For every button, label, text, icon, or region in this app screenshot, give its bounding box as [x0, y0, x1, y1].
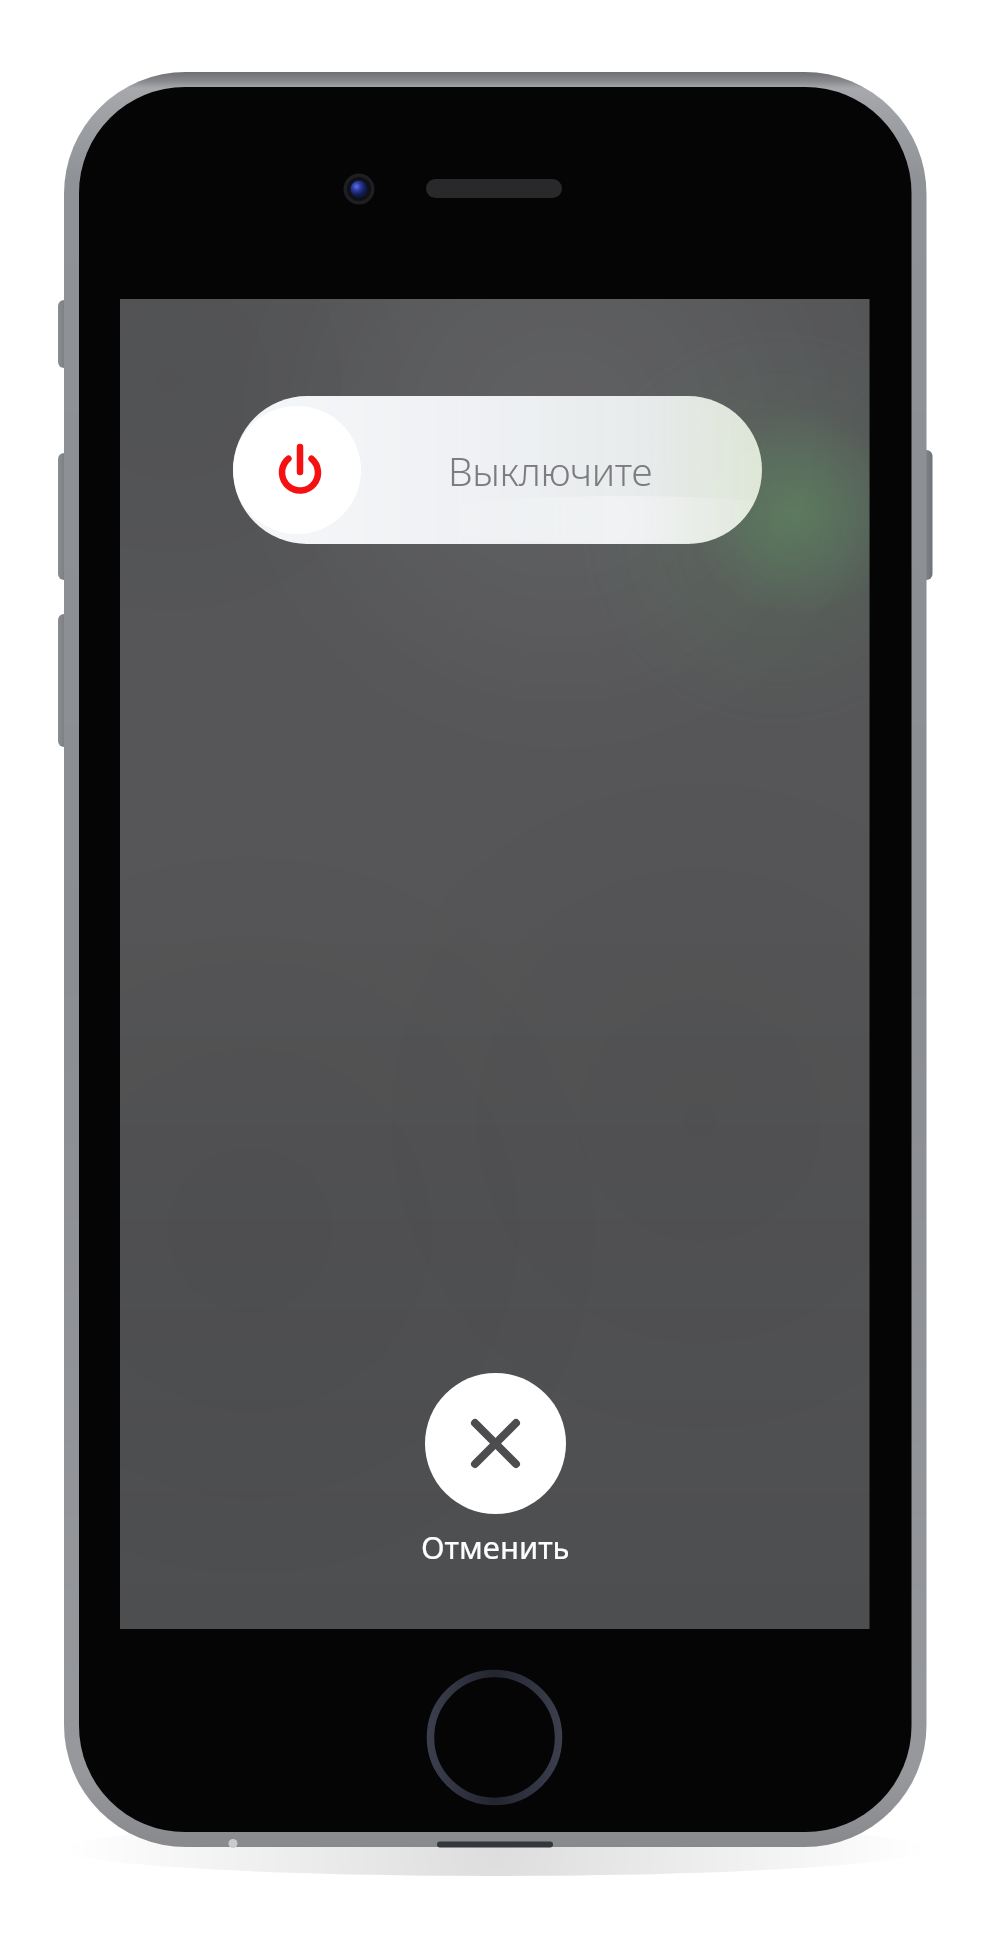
button[interactable]: Выключите — [233, 396, 762, 544]
button[interactable]: Отменить — [390, 1373, 600, 1568]
staticText: Отменить — [421, 1526, 570, 1568]
staticText: Выключите — [448, 444, 653, 497]
